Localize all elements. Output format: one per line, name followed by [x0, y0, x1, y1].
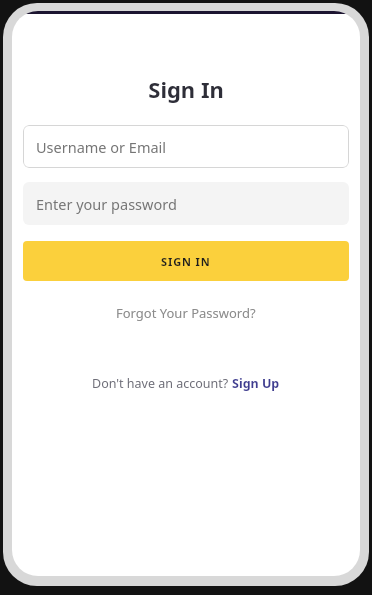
staticText: Sign Up [232, 375, 280, 392]
staticText: Sign In [148, 74, 224, 104]
staticText: SIGN IN [161, 254, 211, 269]
button[interactable]: Enter your password [23, 182, 349, 225]
button[interactable]: Forgot Your Password? [110, 301, 262, 325]
button[interactable]: Sign Up [232, 375, 280, 392]
button[interactable]: SIGN IN [23, 241, 349, 281]
button[interactable]: Username or Email [23, 125, 349, 168]
staticText: Don't have an account? [92, 375, 232, 392]
staticText: Enter your password [36, 194, 177, 214]
staticText: Forgot Your Password? [116, 304, 256, 322]
staticText: Username or Email [36, 137, 167, 157]
